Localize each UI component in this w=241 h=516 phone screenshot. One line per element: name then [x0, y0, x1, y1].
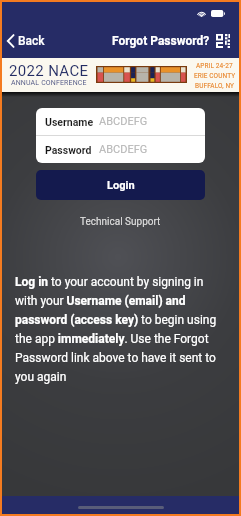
button[interactable]: Password [36, 136, 205, 163]
staticText: Username [45, 116, 94, 128]
staticText: Log in to your account by signing in wit… [15, 275, 222, 384]
staticText: ERIE COUNTY [194, 72, 236, 80]
button[interactable]: Technical Support [74, 213, 167, 231]
staticText: APRIL 24-27 [196, 62, 233, 70]
button[interactable]: Back [2, 29, 53, 53]
staticText: ANNUAL CONFERENCE [11, 79, 87, 87]
staticText: 2022 NACE [9, 62, 89, 80]
staticText: Login [107, 179, 135, 192]
staticText: Password [45, 144, 92, 156]
staticText: ABCDEFG [99, 143, 148, 156]
staticText: BUFFALO, NY [195, 82, 235, 90]
button[interactable]: Login [36, 170, 205, 200]
button[interactable]: Forgot Password? [112, 28, 210, 54]
staticText: Back [18, 34, 45, 48]
button[interactable]: Username [36, 108, 205, 135]
button[interactable]: 2022 NACE [2, 58, 239, 92]
button[interactable]: Scan QR code [215, 33, 232, 49]
staticText: ABCDEFG [99, 115, 148, 128]
